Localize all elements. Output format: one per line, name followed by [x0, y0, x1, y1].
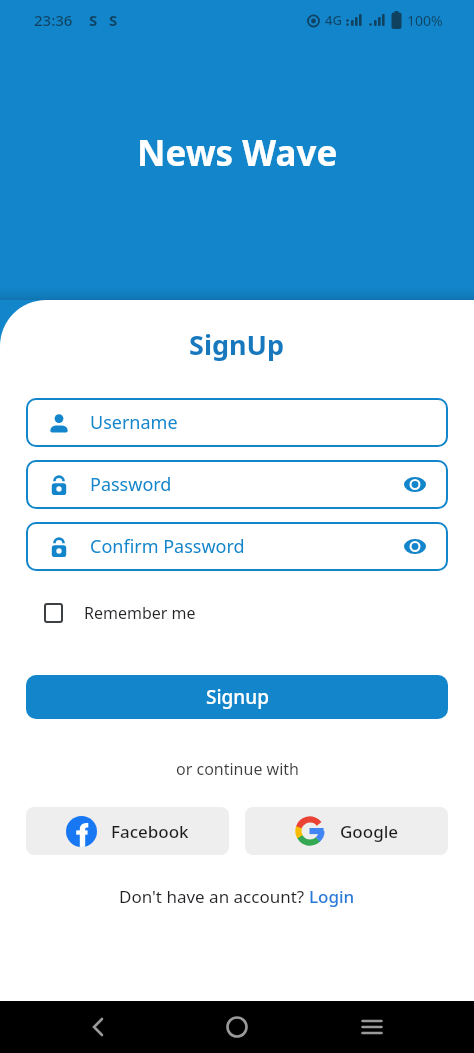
staticText: Confirm Password — [90, 534, 245, 559]
staticText: S — [89, 10, 98, 30]
button[interactable]: Signup — [26, 675, 448, 719]
staticText: S — [109, 10, 118, 30]
button[interactable]: Don't have an account? — [26, 885, 448, 908]
staticText: 23:36 — [34, 10, 73, 30]
staticText: 100% — [407, 11, 443, 30]
button[interactable]: Remember me — [44, 602, 196, 624]
button[interactable]: Username — [26, 398, 448, 447]
button[interactable] — [84, 1013, 112, 1041]
staticText: Username — [90, 410, 178, 435]
button[interactable]: Password — [26, 460, 448, 509]
staticText: Google — [340, 820, 399, 843]
staticText: 4G — [325, 11, 342, 29]
staticText: or continue with — [176, 758, 299, 780]
staticText: Remember me — [84, 602, 196, 624]
staticText: Don't have an account? — [119, 885, 309, 908]
button[interactable] — [358, 1013, 386, 1041]
staticText: Password — [90, 472, 172, 497]
button[interactable]: Facebook — [26, 807, 229, 855]
staticText: News Wave — [137, 129, 338, 177]
button[interactable]: Confirm Password — [26, 522, 448, 571]
staticText: Login — [309, 885, 355, 908]
button[interactable] — [223, 1013, 251, 1041]
staticText: Signup — [206, 684, 269, 710]
button[interactable]: Google — [245, 807, 448, 855]
staticText: Facebook — [111, 820, 189, 843]
staticText: SignUp — [189, 326, 285, 363]
